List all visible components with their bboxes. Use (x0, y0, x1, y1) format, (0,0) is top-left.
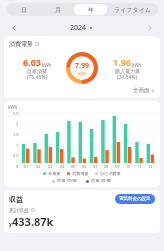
staticText: 月 (55, 6, 61, 14)
button[interactable]: 年 (74, 4, 107, 15)
button[interactable]: 月 (41, 4, 74, 15)
button[interactable]: Next year (144, 22, 156, 34)
button[interactable]: 買電 (買電) (86, 178, 112, 184)
button[interactable]: 自己消費量 (95, 171, 121, 176)
staticText: 2 (16, 122, 19, 127)
staticText: 10 (126, 164, 131, 169)
staticText: 発電量 (48, 171, 61, 176)
staticText: 自己消費量 (100, 171, 121, 176)
button[interactable]: 2024 (70, 23, 93, 33)
button[interactable]: 電気料金の設定 (115, 194, 155, 204)
staticText: 電気料金の設定 (119, 196, 151, 202)
staticText: 2.5 (13, 111, 19, 116)
staticText: 1.96 (113, 56, 131, 68)
staticText: ライフタイム (114, 6, 151, 14)
staticText: 02 (36, 164, 41, 169)
staticText: 06 (82, 164, 87, 169)
staticText: 売電 (売電) (57, 178, 78, 184)
button[interactable]: Previous year (8, 22, 20, 34)
staticText: 05 (71, 164, 76, 169)
staticText: kWh (8, 104, 18, 110)
staticText: 08 (104, 164, 109, 169)
staticText: 0.5 (13, 153, 19, 158)
staticText: (24.54%) (117, 74, 137, 81)
staticText: (75.46%) (27, 74, 47, 81)
staticText: 01 (24, 164, 29, 169)
staticText: 1 (16, 143, 19, 148)
staticText: ¥ (9, 222, 12, 229)
staticText: 07 (93, 164, 98, 169)
staticText: 収益 (9, 195, 23, 204)
staticText: 全画面 (133, 87, 150, 94)
button[interactable]: ライフタイム (107, 4, 157, 15)
button[interactable]: 売電 (売電) (52, 178, 78, 184)
staticText: 0 (16, 164, 19, 169)
button[interactable]: 消費電量 (67, 171, 89, 176)
staticText: 自家消費 (27, 68, 47, 74)
staticText: 日 (21, 6, 27, 14)
staticText: 消費電量 (72, 171, 89, 176)
staticText: 消費電量 (9, 40, 33, 48)
button[interactable]: 発電量 (43, 171, 61, 176)
staticText: 買電 (買電) (91, 178, 112, 184)
staticText: 11 (137, 164, 142, 169)
staticText: 購入電力量 (115, 68, 140, 74)
staticText: kWh (132, 62, 142, 68)
staticText: 累計収益 (9, 207, 29, 213)
staticText: 年 (88, 6, 94, 14)
button[interactable]: 全画面 (133, 87, 155, 94)
staticText: 433.87k (12, 214, 54, 229)
staticText: kWh (78, 71, 87, 76)
staticText: 03 (48, 164, 53, 169)
staticText: 1.5 (13, 132, 19, 137)
staticText: 09 (115, 164, 120, 169)
staticText: 12 (148, 164, 153, 169)
staticText: 7.99 (75, 61, 89, 71)
button[interactable]: 日 (7, 4, 41, 15)
staticText: 6.03 (23, 56, 41, 68)
staticText: 04 (60, 164, 65, 169)
staticText: 2024 (70, 23, 87, 33)
staticText: kWh (42, 62, 52, 68)
